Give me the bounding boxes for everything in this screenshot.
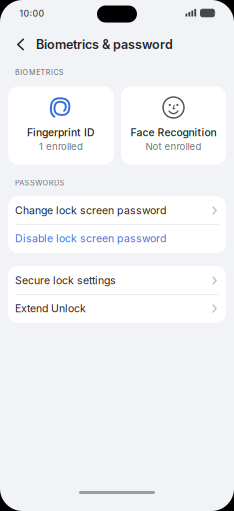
button[interactable]: Extend Unlock (8, 294, 226, 322)
button[interactable]: Disable lock screen password (8, 224, 226, 252)
button[interactable]: Fingerprint ID (8, 86, 114, 164)
button[interactable]: Face Recognition (121, 86, 226, 164)
staticText: PASSWORDS (15, 179, 64, 187)
button[interactable]: Secure lock settings (8, 266, 226, 294)
staticText: Not enrolled (145, 141, 201, 152)
button[interactable]: Change lock screen password (8, 196, 226, 224)
staticText: 10:00 (19, 8, 44, 19)
staticText: Disable lock screen password (15, 232, 166, 245)
button[interactable] (9, 33, 31, 55)
staticText: Fingerprint ID (27, 126, 95, 139)
staticText: Biometrics & password (36, 37, 173, 52)
staticText: Secure lock settings (15, 274, 116, 287)
staticText: Change lock screen password (15, 204, 166, 217)
staticText: Face Recognition (130, 126, 216, 139)
staticText: BIOMETRICS (15, 68, 64, 77)
staticText: Extend Unlock (15, 302, 86, 315)
staticText: 1 enrolled (39, 141, 83, 152)
